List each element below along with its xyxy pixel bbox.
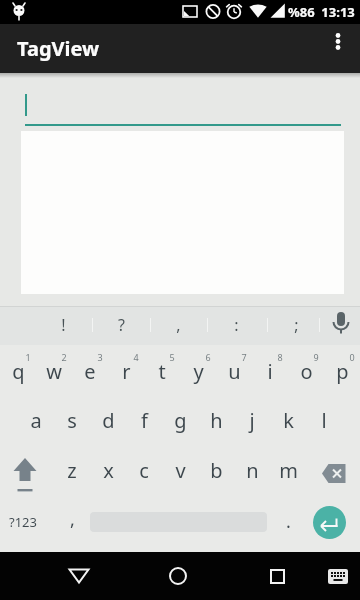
staticText: g [174,407,187,434]
button[interactable]: z [54,453,90,487]
button[interactable]: w [36,354,72,388]
button[interactable]: q [0,354,36,388]
button[interactable]: . [270,504,306,538]
staticText: 7 [241,351,247,363]
staticText: 0 [349,351,355,363]
staticText: , [70,507,75,532]
staticText: q [12,358,25,385]
staticText: s [67,407,77,434]
staticText: x [103,457,114,484]
button[interactable]: s [54,403,90,437]
staticText: ? [118,314,125,336]
staticText: h [210,407,223,434]
staticText: u [228,358,241,385]
staticText: %86 13:13 [288,3,355,21]
button[interactable]: c [126,453,162,487]
button[interactable]: u [216,354,252,388]
button[interactable]: v [162,453,198,487]
staticText: a [30,407,42,434]
staticText: r [122,358,131,385]
staticText: c [139,457,149,484]
button[interactable] [313,506,346,539]
button[interactable]: ! [43,308,83,342]
button[interactable]: e [72,354,108,388]
button[interactable] [318,452,354,492]
staticText: 9 [313,351,319,363]
staticText: : [234,314,239,336]
staticText: v [175,457,186,484]
button[interactable]: t [144,354,180,388]
staticText: p [336,358,349,385]
staticText: 4 [133,351,139,363]
button[interactable]: o [288,354,324,388]
staticText: n [246,457,259,484]
button[interactable] [327,308,355,342]
staticText: m [279,457,298,484]
button[interactable]: k [270,403,306,437]
button[interactable]: , [158,308,198,342]
button[interactable]: , [54,502,90,536]
button[interactable]: ? [101,308,141,342]
staticText: , [176,314,181,336]
button[interactable]: l [306,403,342,437]
button[interactable]: b [198,453,234,487]
staticText: 5 [169,351,175,363]
button[interactable] [255,552,299,600]
button[interactable]: r [108,354,144,388]
staticText: f [141,407,148,434]
button[interactable] [5,450,45,494]
staticText: 3 [97,351,103,363]
button[interactable]: j [234,403,270,437]
button[interactable] [57,552,101,600]
button[interactable] [318,552,358,600]
staticText: ! [61,314,66,336]
staticText: w [46,358,62,385]
staticText: ?123 [9,513,37,531]
staticText: j [249,407,255,434]
button[interactable]: x [90,453,126,487]
staticText: . [286,509,291,534]
button[interactable]: f [126,403,162,437]
staticText: b [210,457,223,484]
button[interactable]: ; [276,308,316,342]
button[interactable]: d [90,403,126,437]
staticText: 8 [277,351,283,363]
button[interactable]: y [180,354,216,388]
button[interactable]: ?123 [1,505,45,539]
button[interactable]: a [18,403,54,437]
staticText: d [102,407,115,434]
staticText: 1 [25,351,31,363]
staticText: i [267,358,273,385]
button[interactable]: : [216,308,256,342]
button[interactable]: h [198,403,234,437]
staticText: 6 [205,351,211,363]
staticText: ; [294,314,299,336]
staticText: k [283,407,294,434]
button[interactable]: m [270,453,306,487]
button[interactable]: n [234,453,270,487]
button[interactable]: p [324,354,360,388]
button[interactable] [156,552,200,600]
staticText: e [84,358,96,385]
button[interactable] [316,24,360,73]
button[interactable]: g [162,403,198,437]
staticText: z [67,457,77,484]
staticText: l [321,407,327,434]
staticText: TagView [17,35,100,62]
staticText: o [300,358,313,385]
staticText: t [158,358,166,385]
button[interactable]: i [252,354,288,388]
staticText: y [193,358,204,385]
staticText: 2 [61,351,67,363]
